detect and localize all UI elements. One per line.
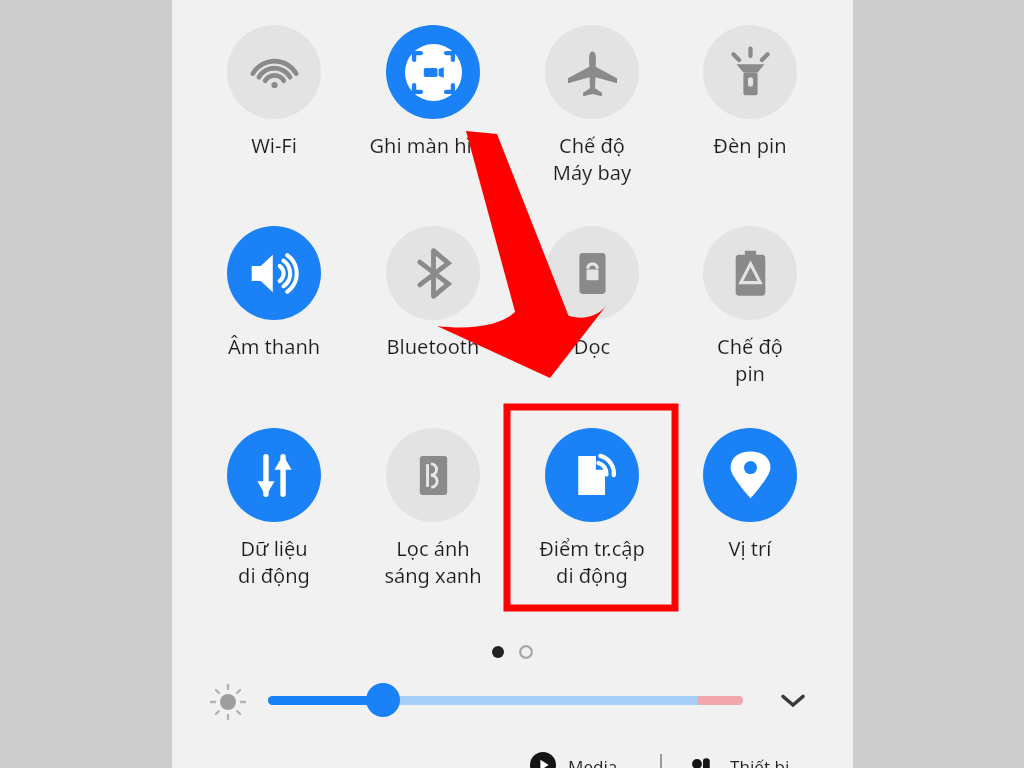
staticText: Đèn pin bbox=[678, 132, 822, 159]
staticText: Thiết bị bbox=[730, 755, 790, 768]
button[interactable] bbox=[366, 683, 400, 717]
staticText: pin bbox=[678, 360, 822, 387]
staticText: Chế độ bbox=[678, 333, 822, 360]
staticText: Dọc bbox=[520, 333, 664, 360]
staticText: Vị trí bbox=[678, 535, 822, 562]
staticText: Chế độ bbox=[520, 132, 664, 159]
button[interactable]: Bluetooth bbox=[361, 226, 505, 360]
button[interactable]: Vị trí bbox=[678, 428, 822, 562]
staticText: sáng xanh bbox=[361, 562, 505, 589]
button[interactable]: Expand bbox=[775, 682, 811, 718]
button[interactable]: Dữ liệu bbox=[202, 428, 346, 589]
staticText: Ghi màn hình bbox=[361, 132, 505, 159]
button[interactable]: Chế độ bbox=[678, 226, 822, 387]
button[interactable] bbox=[268, 696, 743, 705]
staticText: Lọc ánh bbox=[361, 535, 505, 562]
staticText: Máy bay bbox=[520, 159, 664, 186]
button[interactable]: Chế độ bbox=[520, 25, 664, 186]
button[interactable]: Wi-Fi bbox=[202, 25, 346, 159]
other: Brightness bbox=[208, 682, 248, 722]
staticText: Điểm tr.cập bbox=[520, 535, 664, 562]
staticText: Media bbox=[568, 755, 618, 768]
button[interactable]: Lọc ánh bbox=[361, 428, 505, 589]
staticText: di động bbox=[202, 562, 346, 589]
button[interactable]: Dọc bbox=[520, 226, 664, 360]
staticText: di động bbox=[520, 562, 664, 589]
staticText: Bluetooth bbox=[361, 333, 505, 360]
staticText: Dữ liệu bbox=[202, 535, 346, 562]
button[interactable]: Âm thanh bbox=[202, 226, 346, 360]
staticText: Wi-Fi bbox=[202, 132, 346, 159]
button[interactable]: Đèn pin bbox=[678, 25, 822, 159]
button[interactable]: Ghi màn hình bbox=[361, 25, 505, 159]
staticText: Âm thanh bbox=[202, 333, 346, 360]
button[interactable]: Điểm tr.cập bbox=[520, 428, 664, 589]
